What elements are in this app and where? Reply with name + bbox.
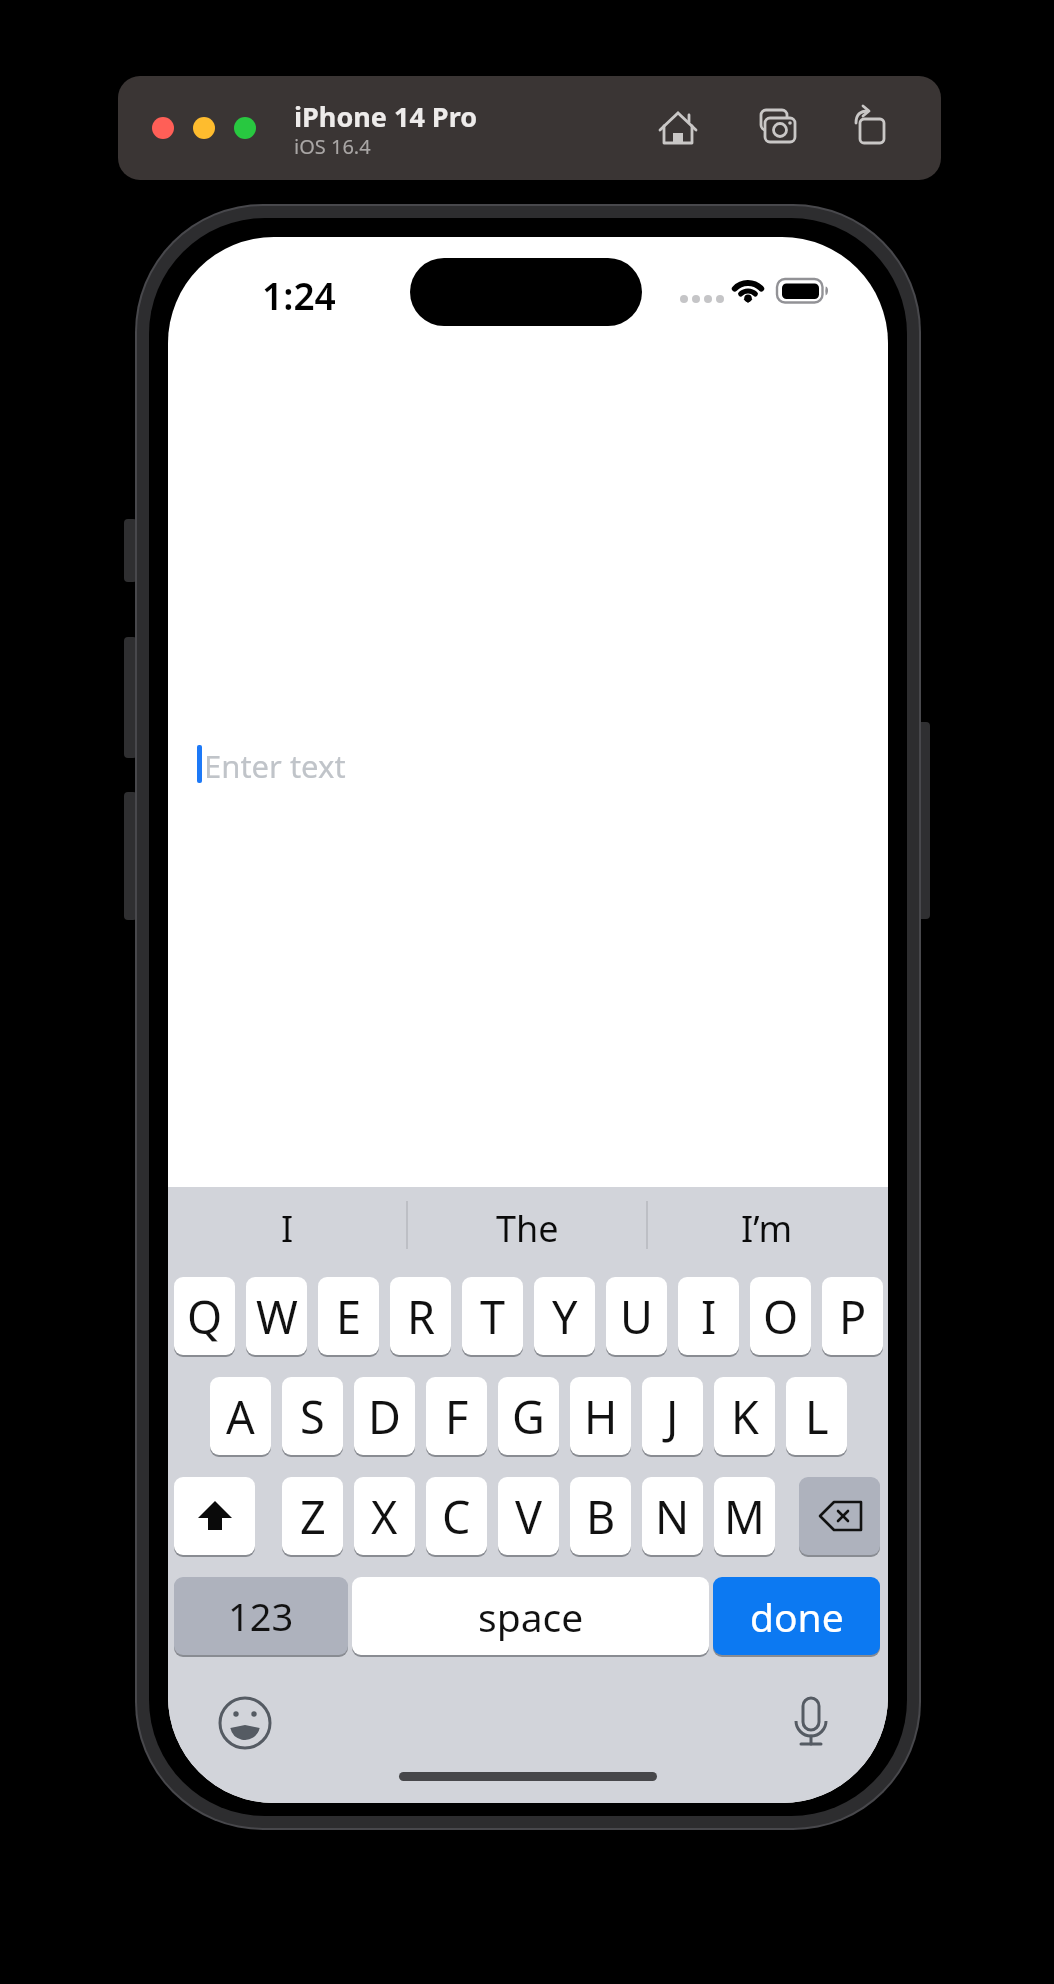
staticText: T xyxy=(480,1286,506,1347)
staticText: G xyxy=(512,1386,545,1447)
button[interactable] xyxy=(174,1477,255,1555)
staticText: The xyxy=(496,1204,559,1253)
staticText: S xyxy=(300,1386,325,1447)
button[interactable] xyxy=(152,117,174,139)
button[interactable] xyxy=(756,105,800,149)
button[interactable]: O xyxy=(750,1277,811,1355)
button[interactable] xyxy=(848,105,892,149)
button[interactable]: E xyxy=(318,1277,379,1355)
button[interactable]: 123 xyxy=(174,1577,348,1655)
staticText: H xyxy=(584,1386,618,1447)
button[interactable]: Y xyxy=(534,1277,595,1355)
staticText: I’m xyxy=(741,1204,793,1253)
button[interactable] xyxy=(656,105,700,149)
staticText: J xyxy=(666,1386,679,1447)
button[interactable]: J xyxy=(642,1377,703,1455)
button[interactable]: B xyxy=(570,1477,631,1555)
staticText: Z xyxy=(300,1486,326,1547)
button[interactable]: S xyxy=(282,1377,343,1455)
staticText: space xyxy=(478,1590,584,1643)
button[interactable]: V xyxy=(498,1477,559,1555)
button[interactable]: K xyxy=(714,1377,775,1455)
button[interactable]: L xyxy=(786,1377,847,1455)
button[interactable]: D xyxy=(354,1377,415,1455)
staticText: N xyxy=(655,1486,690,1547)
staticText: 123 xyxy=(228,1590,294,1642)
button[interactable]: W xyxy=(246,1277,307,1355)
button[interactable]: U xyxy=(606,1277,667,1355)
staticText: I xyxy=(281,1204,294,1253)
button[interactable]: R xyxy=(390,1277,451,1355)
button[interactable]: P xyxy=(822,1277,883,1355)
staticText: B xyxy=(586,1486,616,1547)
button[interactable]: I xyxy=(168,1195,406,1261)
staticText: 1:24 xyxy=(262,270,336,314)
button[interactable]: M xyxy=(714,1477,775,1555)
button[interactable]: Q xyxy=(174,1277,235,1355)
staticText: X xyxy=(371,1486,398,1547)
button[interactable]: The xyxy=(408,1195,646,1261)
button[interactable] xyxy=(220,1698,270,1748)
staticText: Q xyxy=(187,1286,223,1347)
staticText: P xyxy=(839,1286,867,1347)
button[interactable]: Z xyxy=(282,1477,343,1555)
button[interactable]: I’m xyxy=(648,1195,886,1261)
staticText: Y xyxy=(552,1286,578,1347)
staticText: O xyxy=(763,1286,799,1347)
staticText: C xyxy=(442,1486,471,1547)
staticText: L xyxy=(805,1386,829,1447)
staticText: K xyxy=(731,1386,759,1447)
button[interactable]: C xyxy=(426,1477,487,1555)
staticText: A xyxy=(226,1386,255,1447)
staticText: D xyxy=(368,1386,401,1447)
button[interactable]: X xyxy=(354,1477,415,1555)
button[interactable]: T xyxy=(462,1277,523,1355)
button[interactable]: N xyxy=(642,1477,703,1555)
button[interactable]: Enter text xyxy=(204,745,346,787)
staticText: U xyxy=(620,1286,653,1347)
staticText: iPhone 14 Pro xyxy=(294,98,478,135)
button[interactable] xyxy=(234,117,256,139)
staticText: V xyxy=(515,1486,543,1547)
staticText: I xyxy=(701,1286,717,1347)
staticText: R xyxy=(407,1286,435,1347)
button[interactable]: A xyxy=(210,1377,271,1455)
button[interactable] xyxy=(193,117,215,139)
button[interactable]: I xyxy=(678,1277,739,1355)
button[interactable]: done xyxy=(713,1577,880,1655)
button[interactable] xyxy=(786,1698,836,1748)
staticText: M xyxy=(724,1486,765,1547)
button[interactable]: F xyxy=(426,1377,487,1455)
button[interactable] xyxy=(799,1477,880,1555)
staticText: Enter text xyxy=(204,745,346,787)
staticText: E xyxy=(336,1286,362,1347)
button[interactable]: H xyxy=(570,1377,631,1455)
staticText: W xyxy=(256,1286,298,1347)
staticText: done xyxy=(750,1590,844,1643)
staticText: F xyxy=(445,1386,469,1447)
button[interactable]: space xyxy=(352,1577,709,1655)
button[interactable]: G xyxy=(498,1377,559,1455)
staticText: iOS 16.4 xyxy=(294,133,371,160)
